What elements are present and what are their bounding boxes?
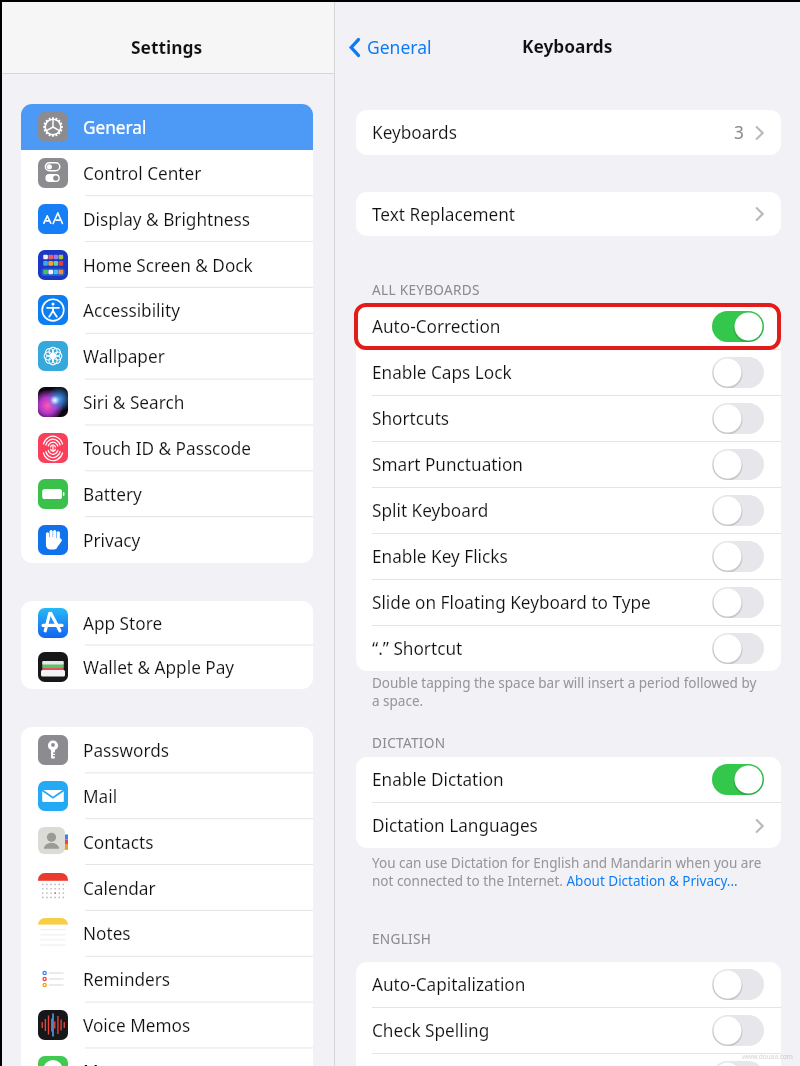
- staticText: Messages: [83, 1060, 163, 1066]
- staticText: You can use Dictation for English and Ma…: [372, 854, 764, 890]
- button[interactable]: Auto-Capitalization: [356, 962, 781, 1007]
- button[interactable]: Auto-Correction: [356, 304, 781, 349]
- staticText: Smart Punctuation: [372, 453, 523, 476]
- staticText: Battery: [83, 483, 142, 506]
- staticText: Enable Key Flicks: [372, 545, 508, 568]
- button[interactable]: Wallpaper: [21, 333, 313, 379]
- button[interactable]: Wallet & Apple Pay: [21, 645, 313, 689]
- button[interactable]: Mail: [21, 773, 313, 819]
- staticText: Privacy: [83, 529, 141, 552]
- button[interactable]: Reminders: [21, 956, 313, 1002]
- staticText: General: [83, 116, 147, 139]
- button[interactable]: Toggle off: [712, 969, 764, 1000]
- button[interactable]: Calendar: [21, 865, 313, 911]
- staticText: Keyboards: [372, 121, 457, 144]
- button[interactable]: Split Keyboard: [356, 488, 781, 533]
- button[interactable]: Back to General: [345, 33, 436, 61]
- staticText: Text Replacement: [372, 203, 516, 226]
- staticText: Keyboards: [522, 35, 613, 59]
- staticText: Slide on Floating Keyboard to Type: [372, 591, 651, 614]
- button[interactable]: General: [21, 104, 313, 150]
- button[interactable]: Messages: [21, 1048, 313, 1066]
- staticText: Display & Brightness: [83, 208, 251, 231]
- staticText: Settings: [131, 35, 203, 59]
- staticText: Voice Memos: [83, 1014, 191, 1037]
- staticText: App Store: [83, 612, 163, 635]
- button[interactable]: Predictive: [356, 1054, 781, 1066]
- button[interactable]: Toggle off: [712, 633, 764, 664]
- button[interactable]: Toggle off: [712, 1015, 764, 1046]
- button[interactable]: Toggle off: [712, 403, 764, 434]
- button[interactable]: Toggle off: [712, 541, 764, 572]
- button[interactable]: Touch ID & Passcode: [21, 425, 313, 471]
- button[interactable]: Toggle off: [712, 1061, 764, 1066]
- button[interactable]: “.” Shortcut: [356, 626, 781, 671]
- staticText: General: [367, 35, 432, 59]
- staticText: Check Spelling: [372, 1019, 490, 1042]
- staticText: Enable Caps Lock: [372, 361, 512, 384]
- staticText: Auto-Capitalization: [372, 973, 526, 996]
- staticText: Auto-Correction: [372, 315, 501, 338]
- staticText: Contacts: [83, 831, 154, 854]
- button[interactable]: Text Replacement: [356, 192, 781, 236]
- staticText: Accessibility: [83, 299, 180, 322]
- button[interactable]: Toggle off: [712, 357, 764, 388]
- staticText: Split Keyboard: [372, 499, 489, 522]
- button[interactable]: Privacy: [21, 517, 313, 563]
- button[interactable]: Toggle off: [712, 495, 764, 526]
- button[interactable]: App Store: [21, 601, 313, 645]
- staticText: Passwords: [83, 739, 169, 762]
- staticText: Notes: [83, 922, 131, 945]
- button[interactable]: Slide on Floating Keyboard to Type: [356, 580, 781, 625]
- staticText: Double tapping the space bar will insert…: [372, 674, 757, 710]
- staticText: Siri & Search: [83, 391, 185, 414]
- staticText: Mail: [83, 785, 118, 808]
- button[interactable]: Enable Key Flicks: [356, 534, 781, 579]
- staticText: Touch ID & Passcode: [83, 437, 252, 460]
- button[interactable]: Toggle off: [712, 449, 764, 480]
- staticText: ENGLISH: [372, 929, 432, 948]
- button[interactable]: Toggle off: [712, 587, 764, 618]
- staticText: DICTATION: [372, 733, 446, 752]
- button[interactable]: Shortcuts: [356, 396, 781, 441]
- button[interactable]: Enable Caps Lock: [356, 350, 781, 395]
- button[interactable]: Siri & Search: [21, 379, 313, 425]
- button[interactable]: Check Spelling: [356, 1008, 781, 1053]
- staticText: Calendar: [83, 877, 156, 900]
- button[interactable]: Toggle on: [712, 311, 764, 342]
- staticText: ALL KEYBOARDS: [372, 280, 480, 299]
- button[interactable]: Dictation Languages: [356, 803, 781, 848]
- button[interactable]: Keyboards: [356, 110, 781, 155]
- button[interactable]: Passwords: [21, 727, 313, 773]
- staticText: Wallet & Apple Pay: [83, 656, 235, 679]
- staticText: Dictation Languages: [372, 814, 538, 837]
- button[interactable]: Home Screen & Dock: [21, 242, 313, 288]
- button[interactable]: Toggle on: [712, 764, 764, 795]
- button[interactable]: Battery: [21, 471, 313, 517]
- button[interactable]: Enable Dictation: [356, 757, 781, 802]
- button[interactable]: Control Center: [21, 150, 313, 196]
- staticText: 3: [734, 121, 744, 144]
- button[interactable]: Notes: [21, 910, 313, 956]
- staticText: Home Screen & Dock: [83, 254, 253, 277]
- staticText: www.douaa.com: [742, 1052, 793, 1061]
- button[interactable]: Voice Memos: [21, 1002, 313, 1048]
- button[interactable]: Contacts: [21, 819, 313, 865]
- button[interactable]: Smart Punctuation: [356, 442, 781, 487]
- staticText: Enable Dictation: [372, 768, 504, 791]
- staticText: Shortcuts: [372, 407, 450, 430]
- staticText: Reminders: [83, 968, 171, 991]
- button[interactable]: Accessibility: [21, 287, 313, 333]
- staticText: Control Center: [83, 162, 202, 185]
- staticText: Wallpaper: [83, 345, 165, 368]
- staticText: “.” Shortcut: [372, 637, 463, 660]
- button[interactable]: Display & Brightness: [21, 196, 313, 242]
